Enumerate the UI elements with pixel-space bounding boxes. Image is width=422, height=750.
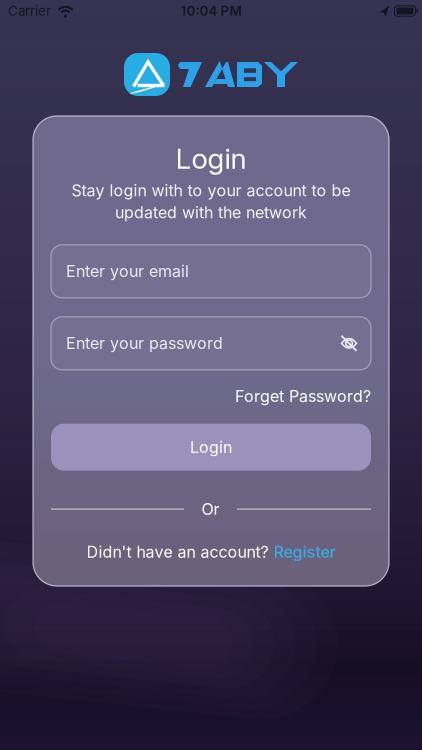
staticText: Forget Password?	[235, 387, 371, 406]
button[interactable]: Login	[51, 424, 371, 471]
staticText: Register	[273, 542, 335, 561]
staticText: Or	[201, 500, 219, 519]
staticText: Stay login with to your account to be	[71, 181, 350, 200]
staticText: 10:04 PM	[180, 3, 241, 19]
staticText: Enter your password	[66, 334, 223, 353]
staticText: Login	[190, 438, 232, 457]
staticText: Enter your email	[66, 262, 189, 281]
staticText: updated with the network	[115, 203, 307, 222]
staticText: Login	[175, 142, 246, 175]
button[interactable]: Register	[273, 542, 335, 561]
staticText: Didn't have an account?	[86, 542, 268, 561]
staticText: Carrier	[8, 3, 51, 19]
button[interactable]: Forget Password?	[235, 387, 371, 406]
button[interactable]: Show password	[341, 335, 371, 351]
